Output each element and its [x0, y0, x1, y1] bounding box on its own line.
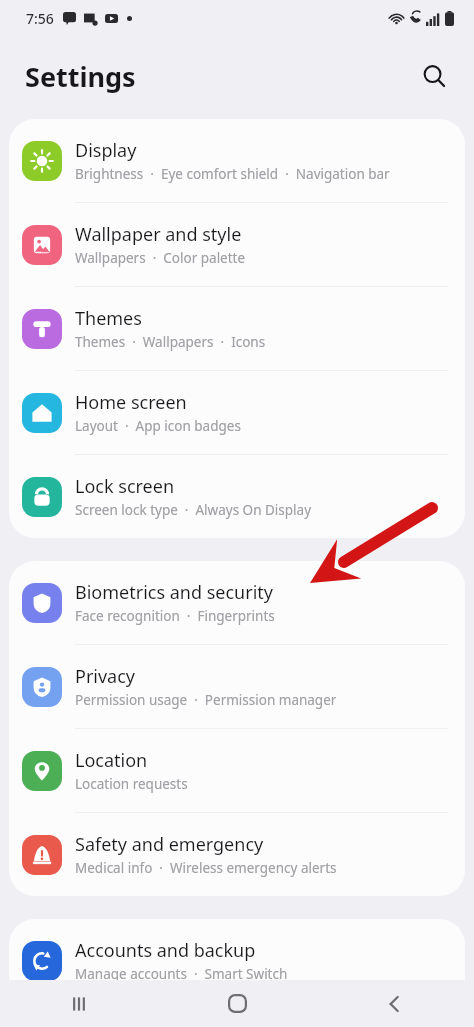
staticText: Wallpapers · Color palette — [75, 249, 246, 267]
staticText: Settings — [25, 58, 136, 95]
staticText: 7:56 — [26, 9, 54, 28]
button[interactable]: Search — [410, 52, 458, 100]
staticText: Layout · App icon badges — [75, 417, 241, 435]
staticText: Accounts and backup — [75, 938, 256, 963]
staticText: Themes · Wallpapers · Icons — [75, 333, 266, 351]
button[interactable]: Location — [9, 729, 465, 812]
staticText: Display — [75, 138, 137, 163]
staticText: Biometrics and security — [75, 580, 273, 605]
staticText: Permission usage · Permission manager — [75, 691, 337, 709]
staticText: Safety and emergency — [75, 832, 264, 857]
staticText: Home screen — [75, 390, 187, 415]
staticText: Lock screen — [75, 474, 175, 499]
button[interactable]: Wallpaper and style — [9, 203, 465, 286]
button[interactable]: Recent apps — [0, 980, 158, 1027]
button[interactable]: Home screen — [9, 371, 465, 454]
staticText: Medical info · Wireless emergency alerts — [75, 859, 337, 877]
button[interactable]: Accounts and backup — [9, 919, 465, 1002]
staticText: Manage accounts · Smart Switch — [75, 965, 288, 983]
staticText: Wallpaper and style — [75, 222, 242, 247]
button[interactable]: Biometrics and security — [9, 561, 465, 644]
button[interactable]: Lock screen — [9, 455, 465, 538]
button[interactable]: Home — [158, 980, 316, 1027]
button[interactable]: Display — [9, 119, 465, 202]
staticText: Face recognition · Fingerprints — [75, 607, 275, 625]
button[interactable]: Safety and emergency — [9, 813, 465, 896]
button[interactable]: Themes — [9, 287, 465, 370]
staticText: Themes — [75, 306, 142, 331]
button[interactable]: Privacy — [9, 645, 465, 728]
button[interactable]: Back — [316, 980, 474, 1027]
staticText: Location — [75, 748, 148, 773]
staticText: Screen lock type · Always On Display — [75, 501, 312, 519]
staticText: Privacy — [75, 664, 136, 689]
staticText: Location requests — [75, 775, 188, 793]
staticText: Brightness · Eye comfort shield · Naviga… — [75, 165, 390, 183]
